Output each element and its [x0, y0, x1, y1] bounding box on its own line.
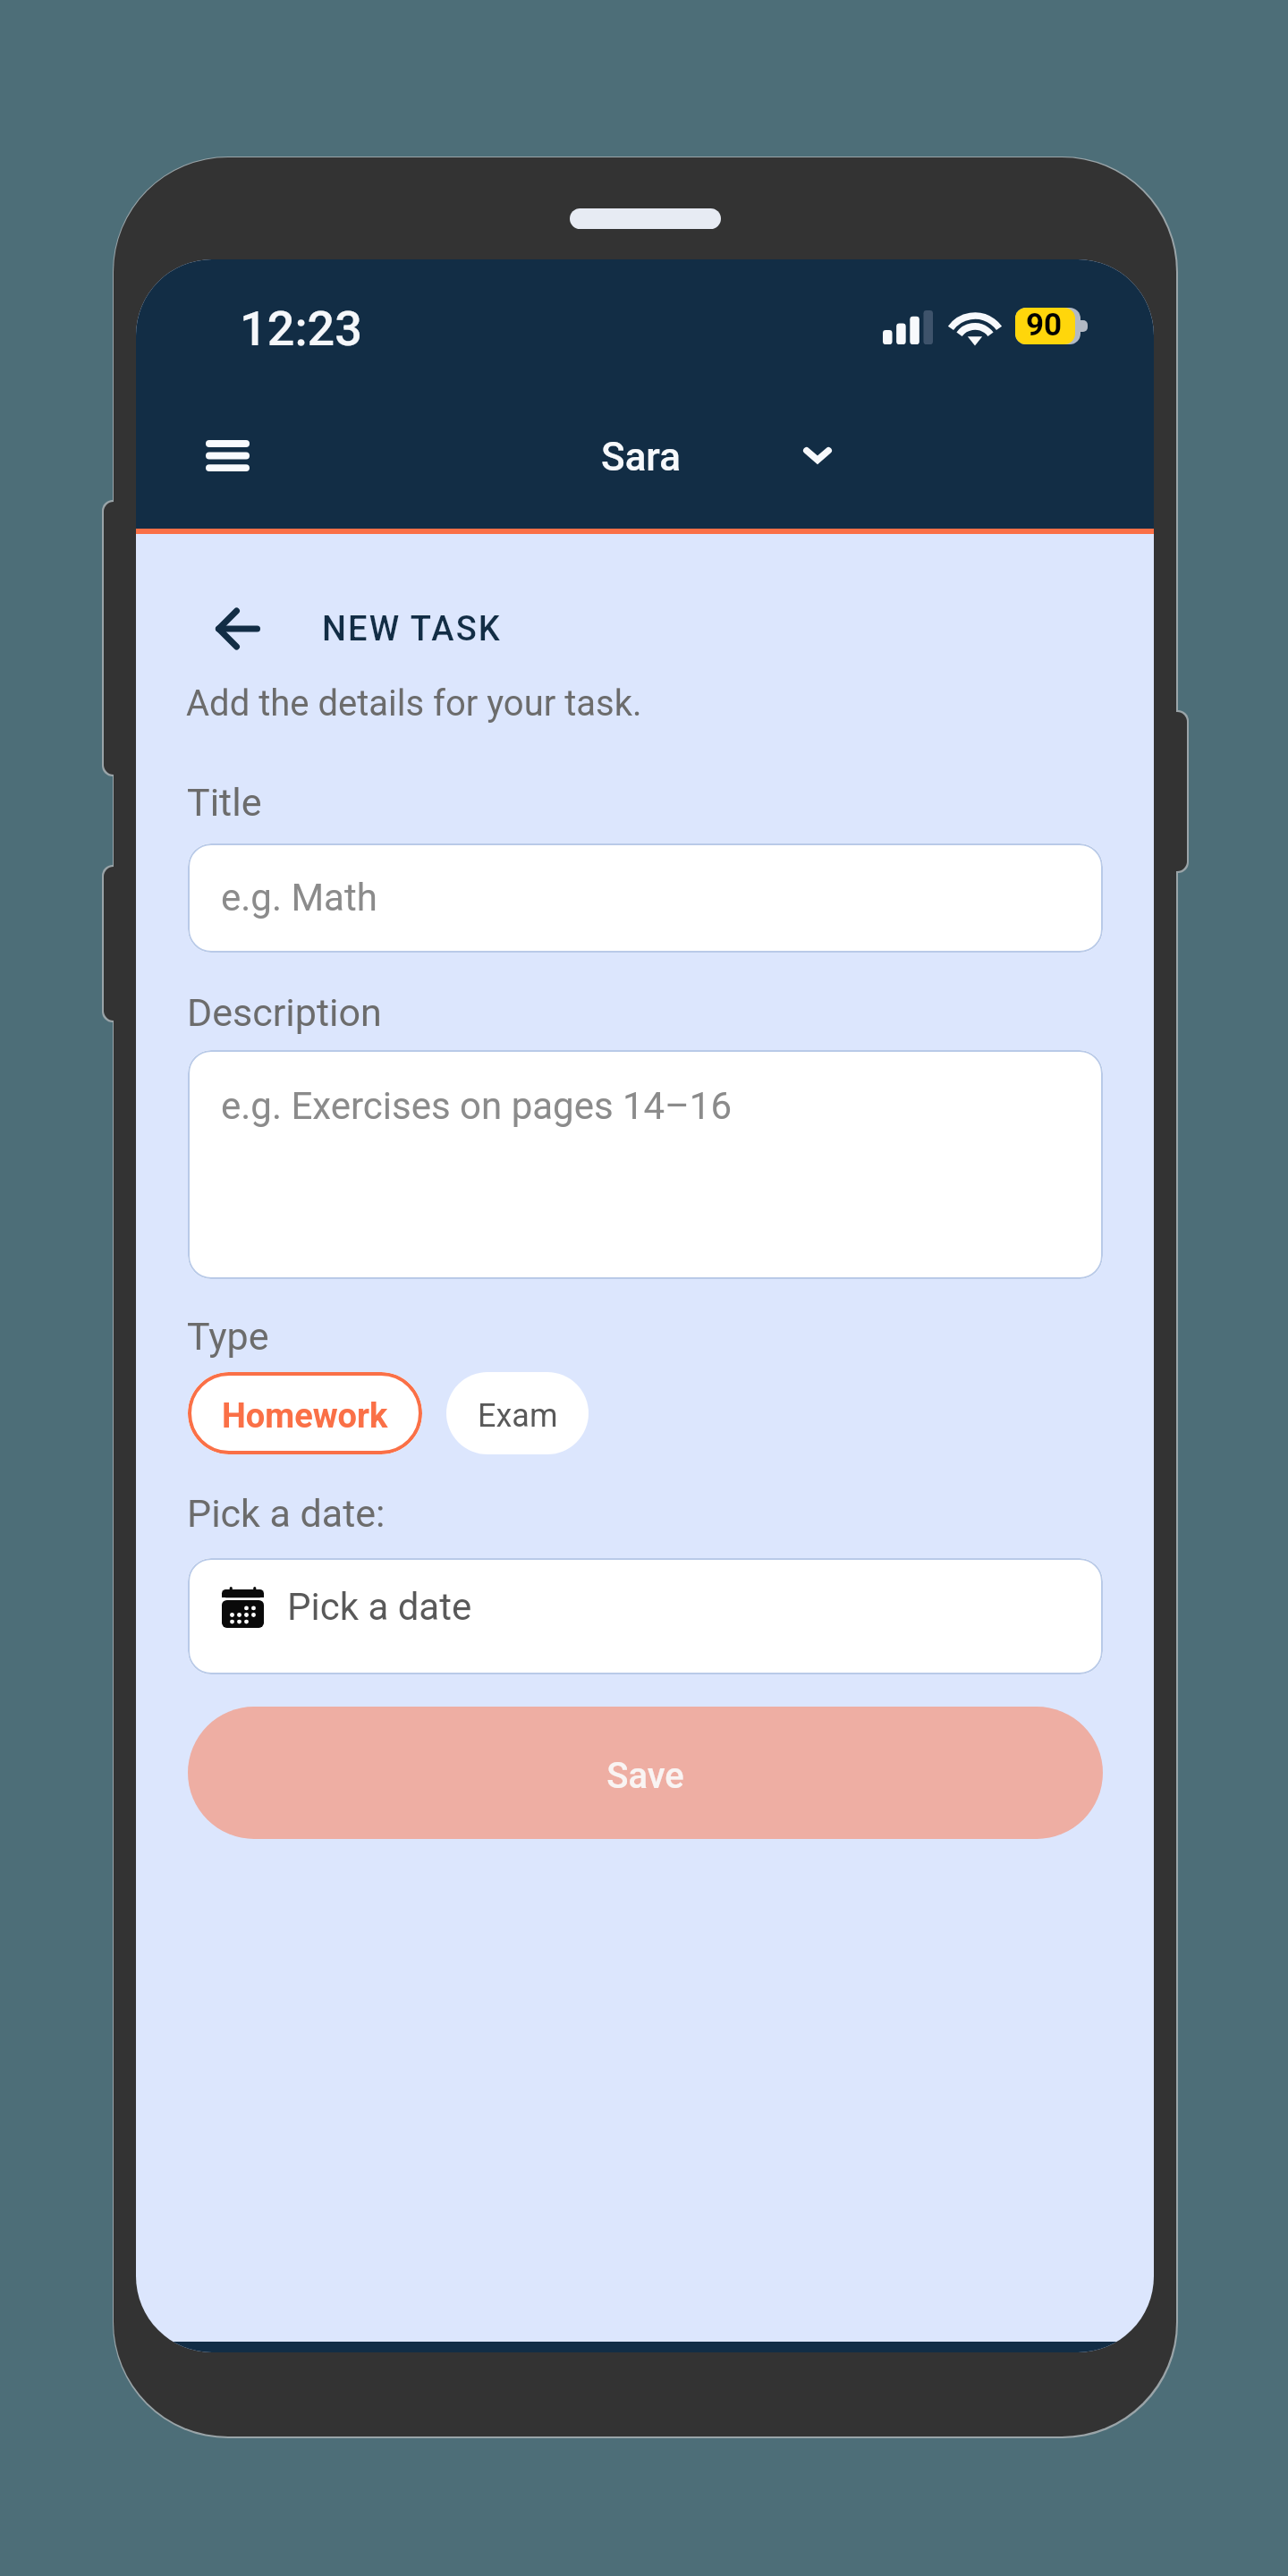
button[interactable]: Switch profile: [589, 413, 859, 497]
staticText: 12:23: [240, 301, 363, 357]
button[interactable]: Exam: [446, 1372, 589, 1454]
staticText: Add the details for your task.: [186, 682, 642, 724]
staticText: Title: [187, 780, 262, 825]
button[interactable]: Menu: [179, 413, 275, 497]
staticText: Pick a date: [287, 1585, 472, 1629]
button[interactable]: Save: [188, 1707, 1103, 1839]
staticText: NEW TASK: [322, 609, 502, 649]
staticText: e.g. Exercises on pages 14–16: [221, 1084, 732, 1128]
staticText: Type: [187, 1314, 269, 1359]
staticText: Homework: [222, 1396, 388, 1436]
staticText: Pick a date:: [187, 1491, 386, 1536]
staticText: Description: [187, 990, 382, 1035]
button[interactable]: e.g. Exercises on pages 14–16: [188, 1050, 1103, 1279]
button[interactable]: Pick a date: [188, 1558, 1103, 1674]
staticText: Save: [606, 1755, 684, 1797]
staticText: e.g. Math: [221, 876, 377, 919]
staticText: Exam: [478, 1397, 558, 1435]
button[interactable]: Homework: [188, 1372, 422, 1454]
staticText: Sara: [601, 434, 681, 480]
button[interactable]: Back: [197, 588, 279, 670]
staticText: 90: [1026, 308, 1063, 343]
button[interactable]: e.g. Math: [188, 843, 1103, 953]
